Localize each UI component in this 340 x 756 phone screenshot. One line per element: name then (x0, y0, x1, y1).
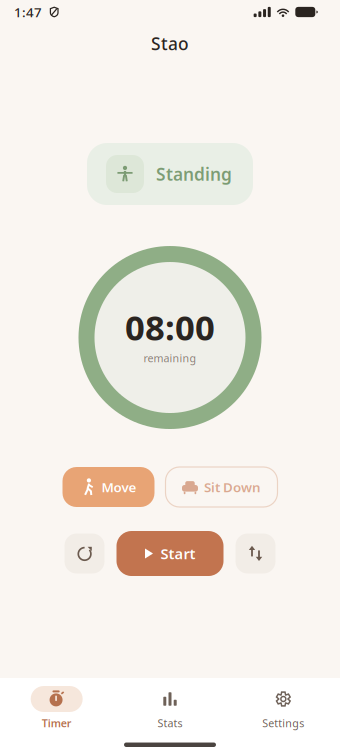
staticText: Timer (42, 716, 72, 730)
staticText: 08:00 (125, 304, 215, 350)
button[interactable]: Reset timer (64, 533, 104, 573)
staticText: Start (160, 544, 195, 563)
staticText: Move (101, 478, 136, 496)
staticText: Sit Down (204, 478, 261, 496)
button[interactable]: Start (116, 531, 223, 576)
staticText: Standing (156, 162, 232, 185)
staticText: Settings (262, 716, 304, 730)
button[interactable]: Settings (227, 686, 340, 730)
button[interactable]: Timer (0, 686, 113, 730)
button[interactable]: Stats (113, 686, 227, 730)
staticText: Stao (151, 32, 189, 55)
staticText: 1:47 (14, 3, 42, 21)
button[interactable]: Sit Down (165, 467, 277, 507)
button[interactable]: Switch posture (235, 533, 275, 573)
staticText: remaining (143, 351, 196, 365)
button[interactable]: Standing (87, 143, 253, 205)
button[interactable]: Move (62, 467, 154, 507)
staticText: Stats (157, 716, 182, 730)
